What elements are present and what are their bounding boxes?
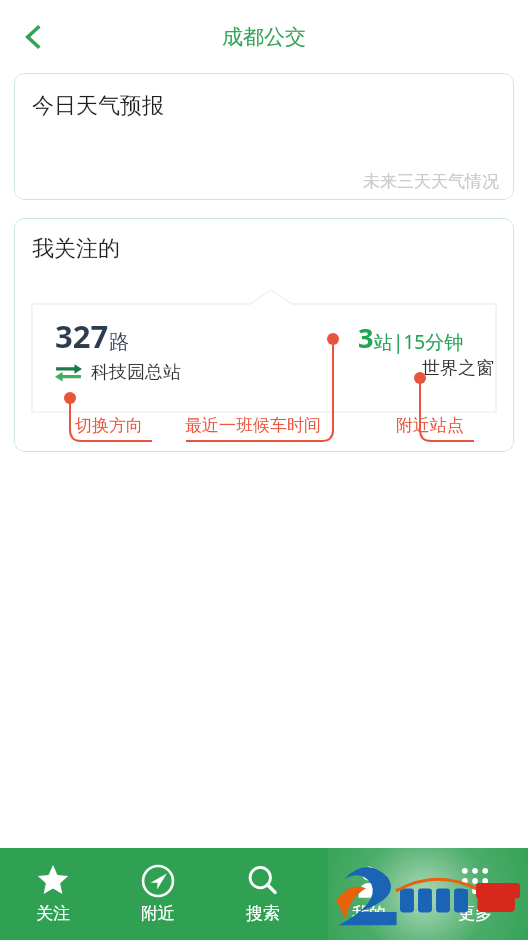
button[interactable]: 更多 [422, 848, 528, 940]
staticText: 最近一班候车时间 [185, 415, 321, 436]
staticText: 成都公交 [222, 24, 306, 50]
staticText: 附近 [141, 903, 175, 924]
staticText: 站|15分钟 [374, 329, 464, 355]
staticText: 科技园总站 [91, 361, 181, 384]
staticText: 路 [109, 330, 129, 355]
staticText: 今日天气预报 [32, 92, 164, 120]
button[interactable]: 搜索 [210, 848, 316, 940]
button[interactable]: 附近 [105, 848, 210, 940]
staticText: 327 [55, 315, 109, 357]
staticText: 未来三天天气情况 [363, 171, 499, 192]
staticText: 搜索 [246, 903, 280, 924]
button[interactable]: 关注 [0, 848, 105, 940]
staticText: 附近站点 [396, 415, 464, 436]
staticText: 世界之窗 [422, 357, 494, 380]
button[interactable]: 327 [32, 290, 496, 412]
button[interactable]: Back [4, 8, 62, 66]
button[interactable]: 今日天气预报 [14, 73, 514, 200]
staticText: 关注 [36, 903, 70, 924]
staticText: 3 [358, 319, 374, 356]
staticText: 我关注的 [32, 235, 120, 263]
staticText: 我的 [352, 903, 386, 924]
staticText: 更多 [458, 903, 492, 924]
button[interactable]: 我的 [316, 848, 422, 940]
staticText: 切换方向 [75, 415, 143, 436]
